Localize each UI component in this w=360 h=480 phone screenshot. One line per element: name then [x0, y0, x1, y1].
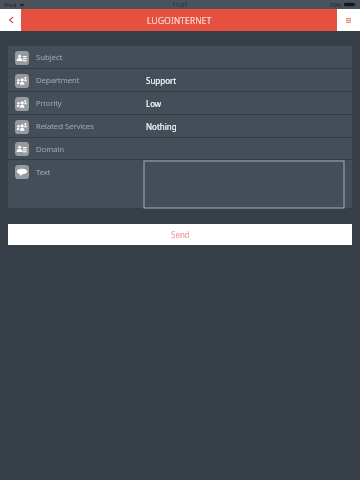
staticText: 11:01 — [172, 1, 188, 9]
staticText: Subject — [36, 52, 63, 63]
button[interactable]: Message text field — [144, 161, 344, 208]
staticText: 99% — [330, 1, 342, 9]
button[interactable]: Back — [0, 9, 21, 31]
button[interactable]: Priority — [8, 92, 352, 115]
button[interactable]: Department — [8, 69, 352, 92]
button[interactable]: Menu — [337, 9, 360, 31]
button[interactable]: Domain — [8, 138, 352, 160]
button[interactable]: Send — [8, 224, 352, 245]
staticText: Send — [171, 229, 190, 240]
staticText: iPad — [4, 1, 17, 9]
staticText: LUGOINTERNET — [147, 15, 212, 26]
staticText: Text — [36, 167, 51, 178]
staticText: Related Services — [36, 121, 95, 132]
staticText: Support — [146, 75, 177, 86]
button[interactable]: Related Services — [8, 115, 352, 138]
button[interactable]: Text — [8, 160, 352, 208]
staticText: Nothing — [146, 121, 177, 132]
staticText: Domain — [36, 144, 65, 155]
staticText: Low — [146, 98, 162, 109]
staticText: Priority — [36, 98, 62, 109]
button[interactable]: Subject — [8, 46, 352, 69]
staticText: Department — [36, 75, 80, 86]
